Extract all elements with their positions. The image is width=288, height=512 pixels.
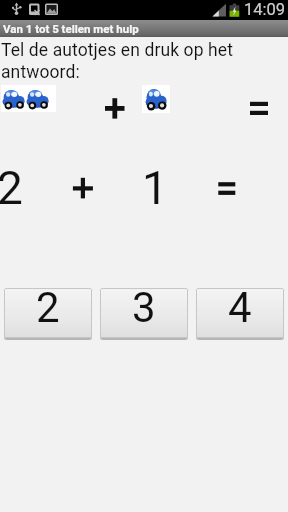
button[interactable]: 4 [196,288,284,338]
staticText: 4 [228,288,252,332]
staticText: 3 [132,288,156,332]
staticText: Tel de autotjes en druk op het antwoord: [1,40,233,82]
button[interactable]: 3 [100,288,188,338]
staticText: Van 1 tot 5 tellen met hulp [3,22,139,35]
staticText: 14:09 [244,0,286,19]
staticText: 2 [0,161,23,215]
staticText: 2 [36,288,60,332]
staticText: 1 [142,161,168,215]
button[interactable]: 2 [4,288,92,338]
